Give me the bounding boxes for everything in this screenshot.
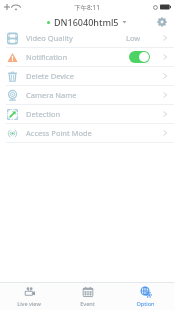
staticText: Detection — [26, 109, 61, 119]
button[interactable]: DN16040html5 — [43, 15, 131, 29]
button[interactable]: Notification — [0, 48, 174, 67]
staticText: Access Point Mode — [26, 128, 92, 138]
button[interactable]: Settings — [154, 14, 170, 29]
button[interactable]: Live view — [0, 283, 58, 310]
staticText: Video Quality — [26, 33, 73, 43]
staticText: Low — [126, 33, 141, 43]
staticText: Delete Device — [26, 71, 74, 81]
staticText: Event — [80, 300, 95, 308]
staticText: DN16040html5 — [54, 16, 119, 28]
button[interactable]: Event — [58, 283, 116, 310]
staticText: Live view — [17, 300, 41, 308]
button[interactable]: Detection — [0, 105, 174, 124]
button[interactable]: Video Quality — [0, 29, 174, 48]
staticText: Notification — [26, 52, 68, 62]
staticText: 下午8:11 — [74, 3, 100, 12]
button[interactable]: Delete Device — [0, 67, 174, 86]
button[interactable]: Access Point Mode — [0, 124, 174, 143]
staticText: Option — [136, 300, 155, 308]
button[interactable]: Camera Name — [0, 86, 174, 105]
staticText: Camera Name — [26, 90, 77, 100]
button[interactable]: Option — [116, 283, 174, 310]
button[interactable]: Notification toggle — [129, 51, 150, 63]
